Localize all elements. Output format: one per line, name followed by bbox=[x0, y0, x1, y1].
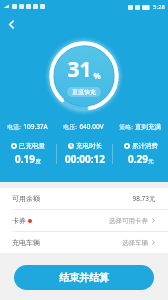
button[interactable]: 累计消费 bbox=[113, 142, 168, 166]
button[interactable]: 卡券 bbox=[0, 210, 168, 231]
staticText: 0.29 bbox=[128, 152, 148, 166]
button[interactable]: 可用余额 bbox=[0, 188, 168, 209]
staticText: 直到充满 bbox=[135, 123, 161, 131]
staticText: % bbox=[93, 70, 101, 81]
button[interactable]: 结束并结算 bbox=[14, 265, 154, 290]
staticText: 选择可用卡券 bbox=[109, 217, 148, 225]
staticText: 选择车辆 bbox=[122, 239, 148, 247]
staticText: 充电时长 bbox=[76, 142, 102, 150]
staticText: 累计消费 bbox=[132, 142, 158, 150]
staticText: 640.00V bbox=[79, 122, 104, 131]
staticText: 已充电量 bbox=[19, 142, 45, 150]
staticText: 可用余额 bbox=[12, 194, 40, 203]
staticText: 元 bbox=[148, 158, 154, 165]
staticText: 0.19 bbox=[15, 152, 35, 166]
staticText: 31 bbox=[67, 55, 92, 84]
staticText: 电流: bbox=[7, 123, 21, 131]
staticText: 度 bbox=[35, 158, 41, 165]
staticText: 卡券 bbox=[12, 216, 26, 225]
staticText: 电压: bbox=[63, 123, 77, 131]
staticText: 充电车辆 bbox=[12, 238, 40, 247]
staticText: 结束并结算 bbox=[59, 271, 109, 284]
button[interactable]: 充电时长 bbox=[57, 142, 112, 166]
staticText: 109.37A bbox=[23, 122, 48, 131]
staticText: 00:00:12 bbox=[65, 152, 105, 166]
staticText: 5:28 bbox=[153, 3, 165, 11]
button[interactable]: 充电车辆 bbox=[0, 232, 168, 253]
staticText: 98.73元 bbox=[132, 194, 156, 203]
staticText: 直流快充 bbox=[72, 88, 96, 96]
button[interactable]: 已充电量 bbox=[0, 142, 56, 166]
staticText: 策略: bbox=[119, 123, 133, 131]
button[interactable]: Back bbox=[0, 13, 22, 35]
